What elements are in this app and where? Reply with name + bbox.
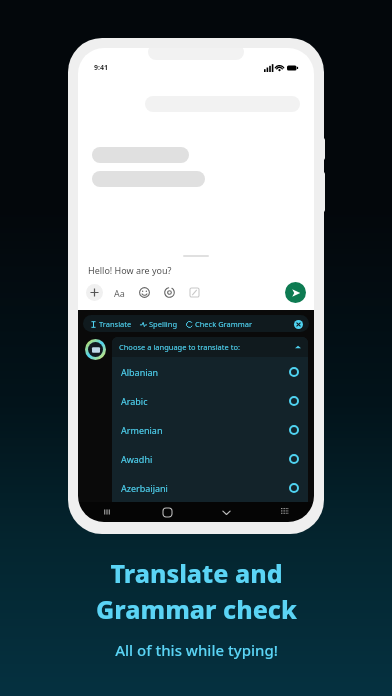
button[interactable]: Close xyxy=(293,319,303,329)
staticText: Spelling xyxy=(149,319,178,329)
button[interactable]: Arabic xyxy=(112,386,308,415)
staticText: Albanian xyxy=(121,366,159,378)
button[interactable]: Choose a language to translate to: xyxy=(112,337,308,357)
staticText: Azerbaijani xyxy=(121,482,168,494)
staticText: Check Grammar xyxy=(195,319,253,329)
staticText: Arabic xyxy=(121,395,148,407)
button[interactable]: Send xyxy=(285,282,306,303)
button[interactable]: Home xyxy=(160,505,174,519)
staticText: Choose a language to translate to: xyxy=(119,342,240,352)
button[interactable]: Albanian xyxy=(112,357,308,386)
button[interactable]: Awadhi xyxy=(112,444,308,473)
button[interactable]: Assistant xyxy=(85,339,106,360)
button[interactable]: Mention xyxy=(161,284,178,301)
staticText: 9:41 xyxy=(94,63,108,73)
button[interactable]: Translate xyxy=(90,319,132,329)
staticText: All of this while typing! xyxy=(115,640,278,660)
staticText: Translate xyxy=(99,319,132,329)
button[interactable]: Sticker xyxy=(186,284,203,301)
staticText: Armenian xyxy=(121,424,163,436)
button[interactable]: Azerbaijani xyxy=(112,473,308,502)
staticText: Aa xyxy=(114,287,125,299)
button[interactable]: Add xyxy=(86,284,103,301)
staticText: Grammar check xyxy=(96,592,297,626)
button[interactable]: Text format xyxy=(111,284,128,301)
button[interactable]: Keyboard xyxy=(278,505,292,519)
button[interactable]: Back xyxy=(219,505,233,519)
button[interactable]: Armenian xyxy=(112,415,308,444)
staticText: Translate and xyxy=(110,556,283,590)
staticText: Awadhi xyxy=(121,453,153,465)
button[interactable]: Recents xyxy=(100,505,114,519)
staticText: Hello! How are you? xyxy=(88,264,172,276)
button[interactable]: Emoji xyxy=(136,284,153,301)
button[interactable]: Spelling xyxy=(140,319,178,329)
button[interactable]: Check Grammar xyxy=(186,319,253,329)
